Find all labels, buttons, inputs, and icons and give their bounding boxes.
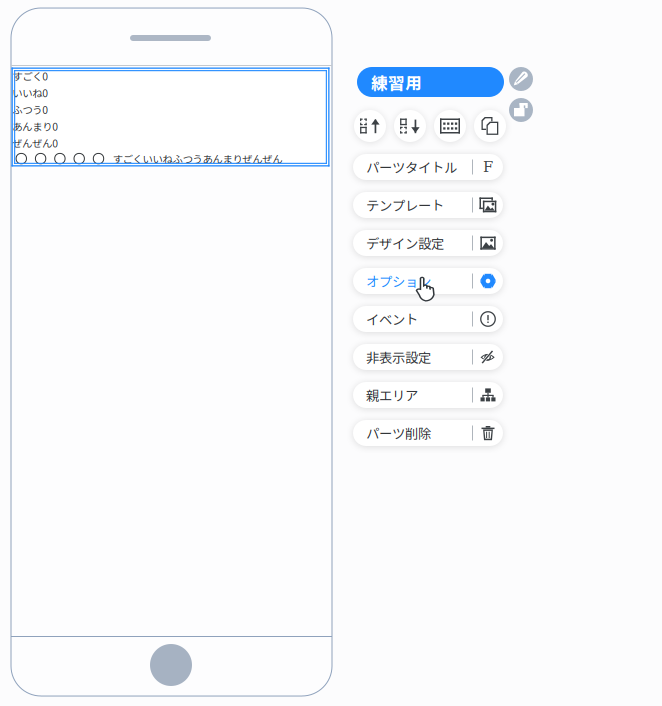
button[interactable]: Duplicate [474,110,506,142]
button[interactable]: Edit [509,67,533,91]
staticText: テンプレート [366,195,444,215]
staticText: ぜんぜん0 [12,135,58,150]
button[interactable]: Unlock [509,98,533,122]
staticText: パーツ削除 [366,423,431,443]
staticText: 親エリア [366,385,418,405]
button[interactable]: パーツタイトル [353,154,503,180]
staticText: F [483,158,493,176]
staticText: すごく0 [12,68,48,84]
staticText: あんまり0 [12,119,58,134]
staticText: デザイン設定 [366,233,444,253]
button[interactable]: デザイン設定 [353,230,503,256]
staticText: パーツタイトル [366,157,457,177]
staticText: 練習用 [371,70,422,94]
staticText: 非表示設定 [366,347,431,367]
button[interactable]: パーツ削除 [353,420,503,446]
button[interactable]: 親エリア [353,382,503,408]
button[interactable]: 非表示設定 [353,344,503,370]
button[interactable]: Move down [394,110,426,142]
staticText: すごくいいねふつうあんまりぜんぜん [113,151,283,166]
button[interactable]: 練習用 [357,67,504,97]
button[interactable]: Grid layout [434,110,466,142]
staticText: いいね0 [12,85,48,100]
staticText: オプション [366,271,431,291]
button[interactable]: テンプレート [353,192,503,218]
staticText: ふつう0 [12,102,48,117]
button[interactable]: イベント [353,306,503,332]
staticText: イベント [366,309,418,329]
button[interactable]: オプション [353,268,503,294]
button[interactable]: Move up [354,110,386,142]
